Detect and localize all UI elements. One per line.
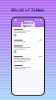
button[interactable] (12, 63, 44, 71)
button[interactable] (12, 44, 44, 55)
button[interactable] (12, 55, 44, 63)
button[interactable] (12, 27, 44, 38)
staticText: Tokken Wallet (22, 21, 33, 28)
button[interactable] (12, 38, 44, 44)
button[interactable]: Tokken Wallet (21, 21, 35, 29)
staticText: World of Tokken (11, 7, 45, 12)
